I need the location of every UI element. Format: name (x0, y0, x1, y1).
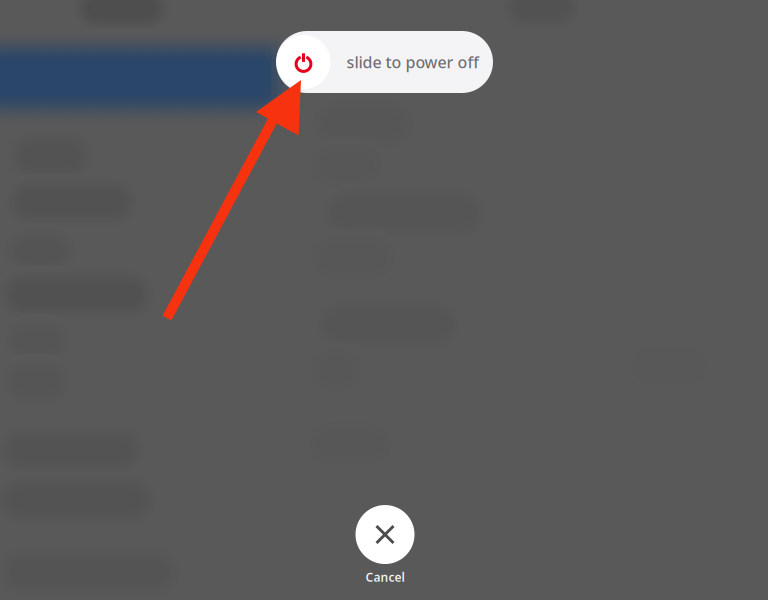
button[interactable]: slide to power off (276, 31, 493, 93)
button[interactable]: Cancel (325, 504, 445, 586)
staticText: slide to power off (346, 51, 478, 73)
staticText: Cancel (365, 569, 404, 585)
